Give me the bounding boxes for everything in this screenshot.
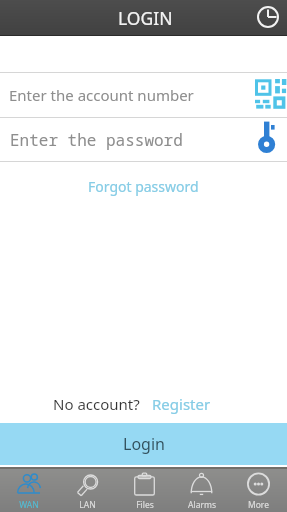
button[interactable]: Scan QR code <box>255 79 287 109</box>
staticText: Enter the password <box>10 129 183 151</box>
staticText: Files <box>136 499 154 511</box>
staticText: LAN <box>79 499 96 511</box>
staticText: WAN <box>19 499 39 511</box>
button[interactable]: WAN <box>0 469 58 512</box>
button[interactable]: LAN <box>58 469 116 512</box>
staticText: More <box>248 499 269 511</box>
button[interactable]: Files <box>116 469 173 512</box>
staticText: No account? <box>53 394 140 414</box>
staticText: Alarms <box>188 499 216 511</box>
button[interactable]: Forgot password <box>88 177 199 196</box>
button[interactable]: Alarms <box>173 469 230 512</box>
button[interactable]: Register <box>152 394 211 414</box>
button[interactable]: More <box>230 469 287 512</box>
button[interactable]: History <box>256 5 279 28</box>
staticText: LOGIN <box>118 6 173 30</box>
staticText: Login <box>123 433 165 455</box>
button[interactable]: Enter the password <box>0 118 287 161</box>
button[interactable]: Login <box>0 423 287 465</box>
button[interactable]: Show password <box>258 121 276 153</box>
button[interactable]: Enter the account number <box>0 73 287 117</box>
staticText: Enter the account number <box>9 85 194 105</box>
